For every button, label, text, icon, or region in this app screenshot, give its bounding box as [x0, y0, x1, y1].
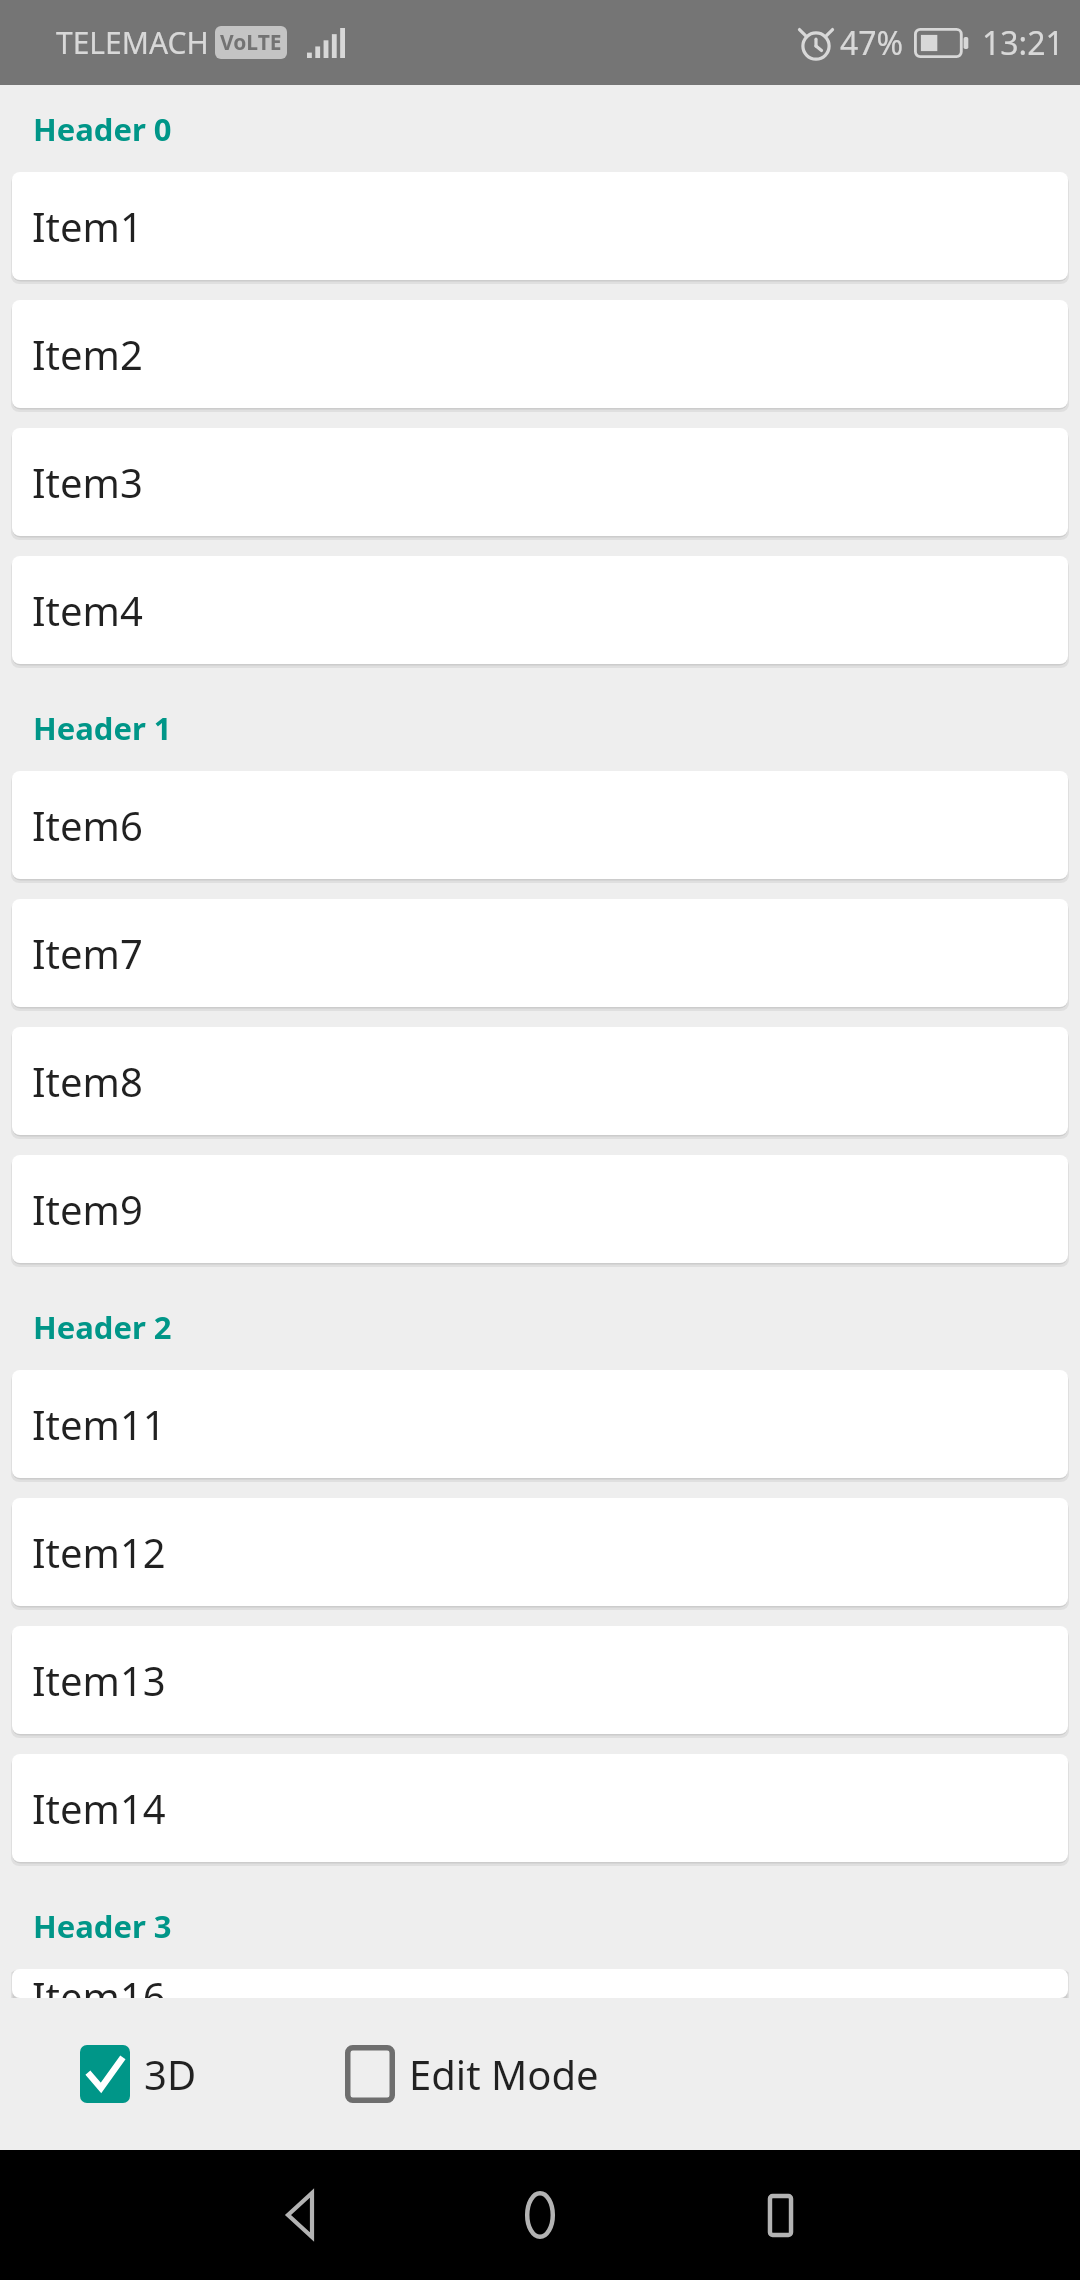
staticText: Item13: [32, 1653, 166, 1707]
button[interactable]: Item3: [12, 428, 1068, 536]
button[interactable]: Home: [420, 2150, 660, 2280]
staticText: Item7: [32, 926, 143, 980]
staticText: Header 2: [33, 1306, 172, 1348]
button[interactable]: Item9: [12, 1155, 1068, 1263]
button[interactable]: Item8: [12, 1027, 1068, 1135]
staticText: TELEMACH: [56, 22, 209, 63]
staticText: Item16: [32, 1969, 166, 1998]
button[interactable]: Item1: [12, 172, 1068, 280]
button[interactable]: Back: [180, 2150, 420, 2280]
staticText: 47%: [840, 21, 904, 65]
staticText: Header 1: [33, 707, 172, 749]
button[interactable]: Item14: [12, 1754, 1068, 1862]
button[interactable]: Item6: [12, 771, 1068, 879]
staticText: 3D: [144, 2047, 197, 2101]
button[interactable]: Item16: [12, 1969, 1068, 1998]
staticText: Item9: [32, 1182, 143, 1236]
staticText: Item6: [32, 798, 143, 852]
button[interactable]: Edit Mode: [345, 2045, 599, 2103]
staticText: Item8: [32, 1054, 143, 1108]
button[interactable]: 3D: [80, 2045, 197, 2103]
staticText: Item14: [32, 1781, 166, 1835]
button[interactable]: Item7: [12, 899, 1068, 1007]
button[interactable]: Item11: [12, 1370, 1068, 1478]
staticText: Item1: [32, 199, 143, 253]
staticText: Item4: [32, 583, 143, 637]
staticText: Item2: [32, 327, 143, 381]
button[interactable]: Recent apps: [660, 2150, 900, 2280]
staticText: 13:21: [982, 21, 1064, 65]
staticText: Item12: [32, 1525, 166, 1579]
staticText: Header 0: [33, 108, 172, 150]
staticText: Edit Mode: [409, 2047, 599, 2101]
button[interactable]: Item12: [12, 1498, 1068, 1606]
staticText: Header 3: [33, 1905, 172, 1947]
staticText: Item11: [32, 1397, 166, 1451]
button[interactable]: Item4: [12, 556, 1068, 664]
button[interactable]: Item2: [12, 300, 1068, 408]
staticText: Item3: [32, 455, 143, 509]
staticText: VoLTE: [220, 28, 282, 57]
button[interactable]: Item13: [12, 1626, 1068, 1734]
